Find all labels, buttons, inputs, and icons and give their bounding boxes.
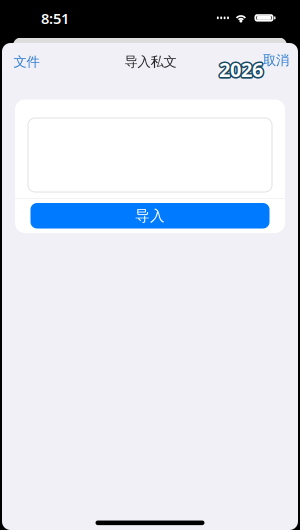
staticText: 2026 — [219, 54, 263, 81]
staticText: 导入 — [135, 207, 165, 225]
button[interactable]: 文件 — [0, 47, 48, 76]
staticText: 导入私文 — [124, 53, 176, 70]
staticText: 2026 — [220, 57, 264, 84]
button[interactable]: 导入 — [30, 203, 269, 228]
staticText: 2026 — [218, 55, 262, 81]
staticText: 2026 — [219, 57, 263, 84]
button[interactable]: 取消 — [254, 46, 300, 74]
staticText: 2026 — [217, 56, 261, 83]
staticText: 8:51 — [41, 9, 69, 28]
staticText: 2026 — [220, 55, 264, 81]
staticText: 2026 — [218, 57, 262, 84]
staticText: 文件 — [13, 53, 39, 70]
staticText: 2026 — [220, 56, 264, 83]
staticText: 取消 — [263, 52, 289, 68]
staticText: 2026 — [219, 56, 263, 83]
